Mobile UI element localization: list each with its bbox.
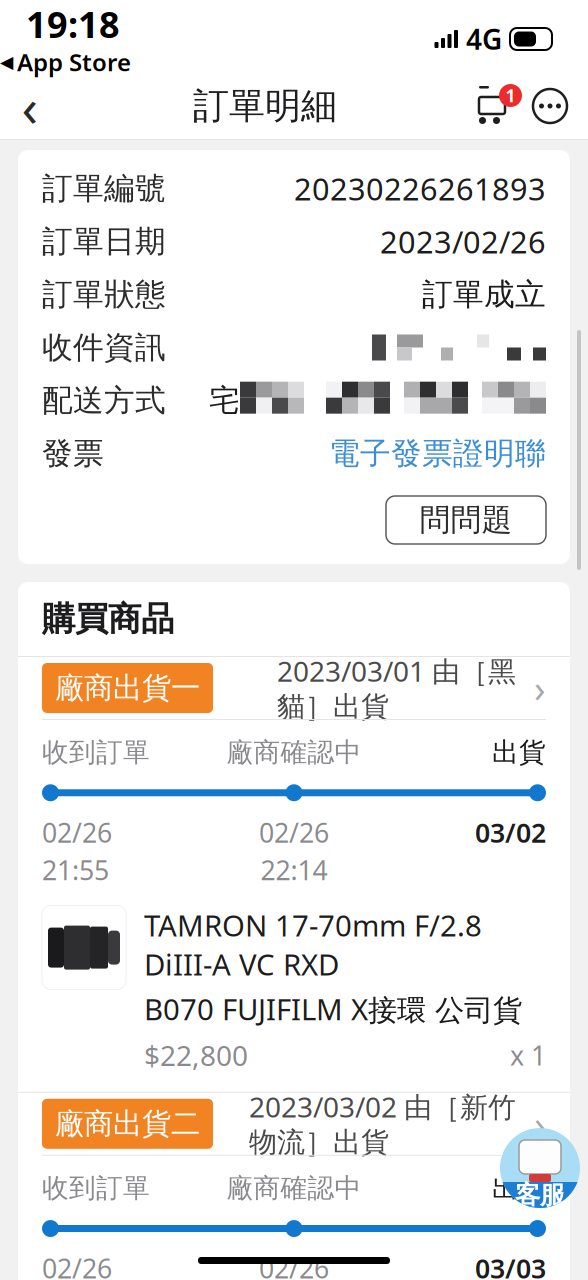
staticText: 電子發票證明聯	[329, 435, 546, 472]
staticText: 2023/03/01 由［黑貓］出貨	[277, 652, 516, 724]
button[interactable]: 電子發票證明聯	[329, 435, 546, 472]
staticText: 配送方式	[42, 382, 166, 419]
staticText: 廠商出貨二	[55, 1106, 200, 1142]
staticText: ›	[524, 1099, 546, 1149]
staticText: 訂單編號	[42, 170, 166, 207]
staticText: ◀	[0, 52, 13, 72]
staticText: 22:14	[260, 852, 327, 888]
staticText: 客服	[515, 1179, 565, 1210]
staticText: 03/03	[475, 1250, 546, 1280]
staticText: $22,800	[144, 1037, 248, 1074]
staticText: 廠商確認中	[226, 736, 361, 769]
staticText: 訂單成立	[422, 276, 546, 313]
staticText: TAMRON 17-70mm F/2.8 DiIII-A VC RXD	[144, 906, 482, 983]
button[interactable]: 廠商出貨一	[42, 657, 546, 719]
staticText: App Store	[17, 46, 131, 78]
staticText: x 1	[510, 1037, 546, 1073]
staticText: 2023/02/26	[380, 221, 546, 262]
button[interactable]: Customer service	[500, 1128, 580, 1208]
staticText: 收到訂單	[42, 1172, 150, 1205]
staticText: 02/26	[42, 1250, 112, 1280]
staticText: 02/26	[42, 815, 112, 850]
staticText: 21:55	[42, 852, 109, 888]
staticText: 02/26	[259, 815, 329, 850]
staticText: 發票	[42, 435, 104, 472]
button[interactable]: 問問題	[386, 496, 546, 544]
staticText: 購買商品	[42, 598, 174, 639]
staticText: 廠商確認中	[226, 1172, 361, 1205]
staticText: 19:18	[26, 0, 120, 48]
staticText: 宅	[209, 382, 240, 419]
staticText: 訂單日期	[42, 223, 166, 260]
button[interactable]: Back	[0, 78, 60, 134]
staticText: 訂單狀態	[42, 276, 166, 313]
staticText: B070 FUJIFILM X接環 公司貨	[144, 989, 522, 1029]
staticText: 4G	[466, 20, 502, 58]
staticText: ›	[524, 663, 546, 713]
staticText: ‹	[21, 71, 38, 141]
staticText: 收到訂單	[42, 736, 150, 769]
staticText: 03/02	[475, 815, 546, 850]
button[interactable]: More options	[524, 82, 576, 130]
staticText: 出貨	[492, 1172, 546, 1205]
staticText: 訂單明細	[193, 84, 337, 128]
staticText: 出貨	[492, 736, 546, 769]
staticText: 20230226261893	[294, 168, 546, 209]
button[interactable]: 廠商出貨二	[42, 1093, 546, 1155]
staticText: 02/26	[259, 1250, 329, 1280]
staticText: 廠商出貨一	[55, 670, 200, 706]
staticText: 問問題	[419, 501, 512, 539]
staticText: 2023/03/02 由［新竹物流］出貨	[249, 1088, 516, 1160]
staticText: 收件資訊	[42, 329, 166, 366]
staticText: 1	[505, 84, 515, 107]
button[interactable]: TAMRON 17-70mm F/2.8 DiIII-A VC RXD	[42, 888, 546, 1092]
button[interactable]: Shopping cart, 1 item	[470, 82, 524, 130]
